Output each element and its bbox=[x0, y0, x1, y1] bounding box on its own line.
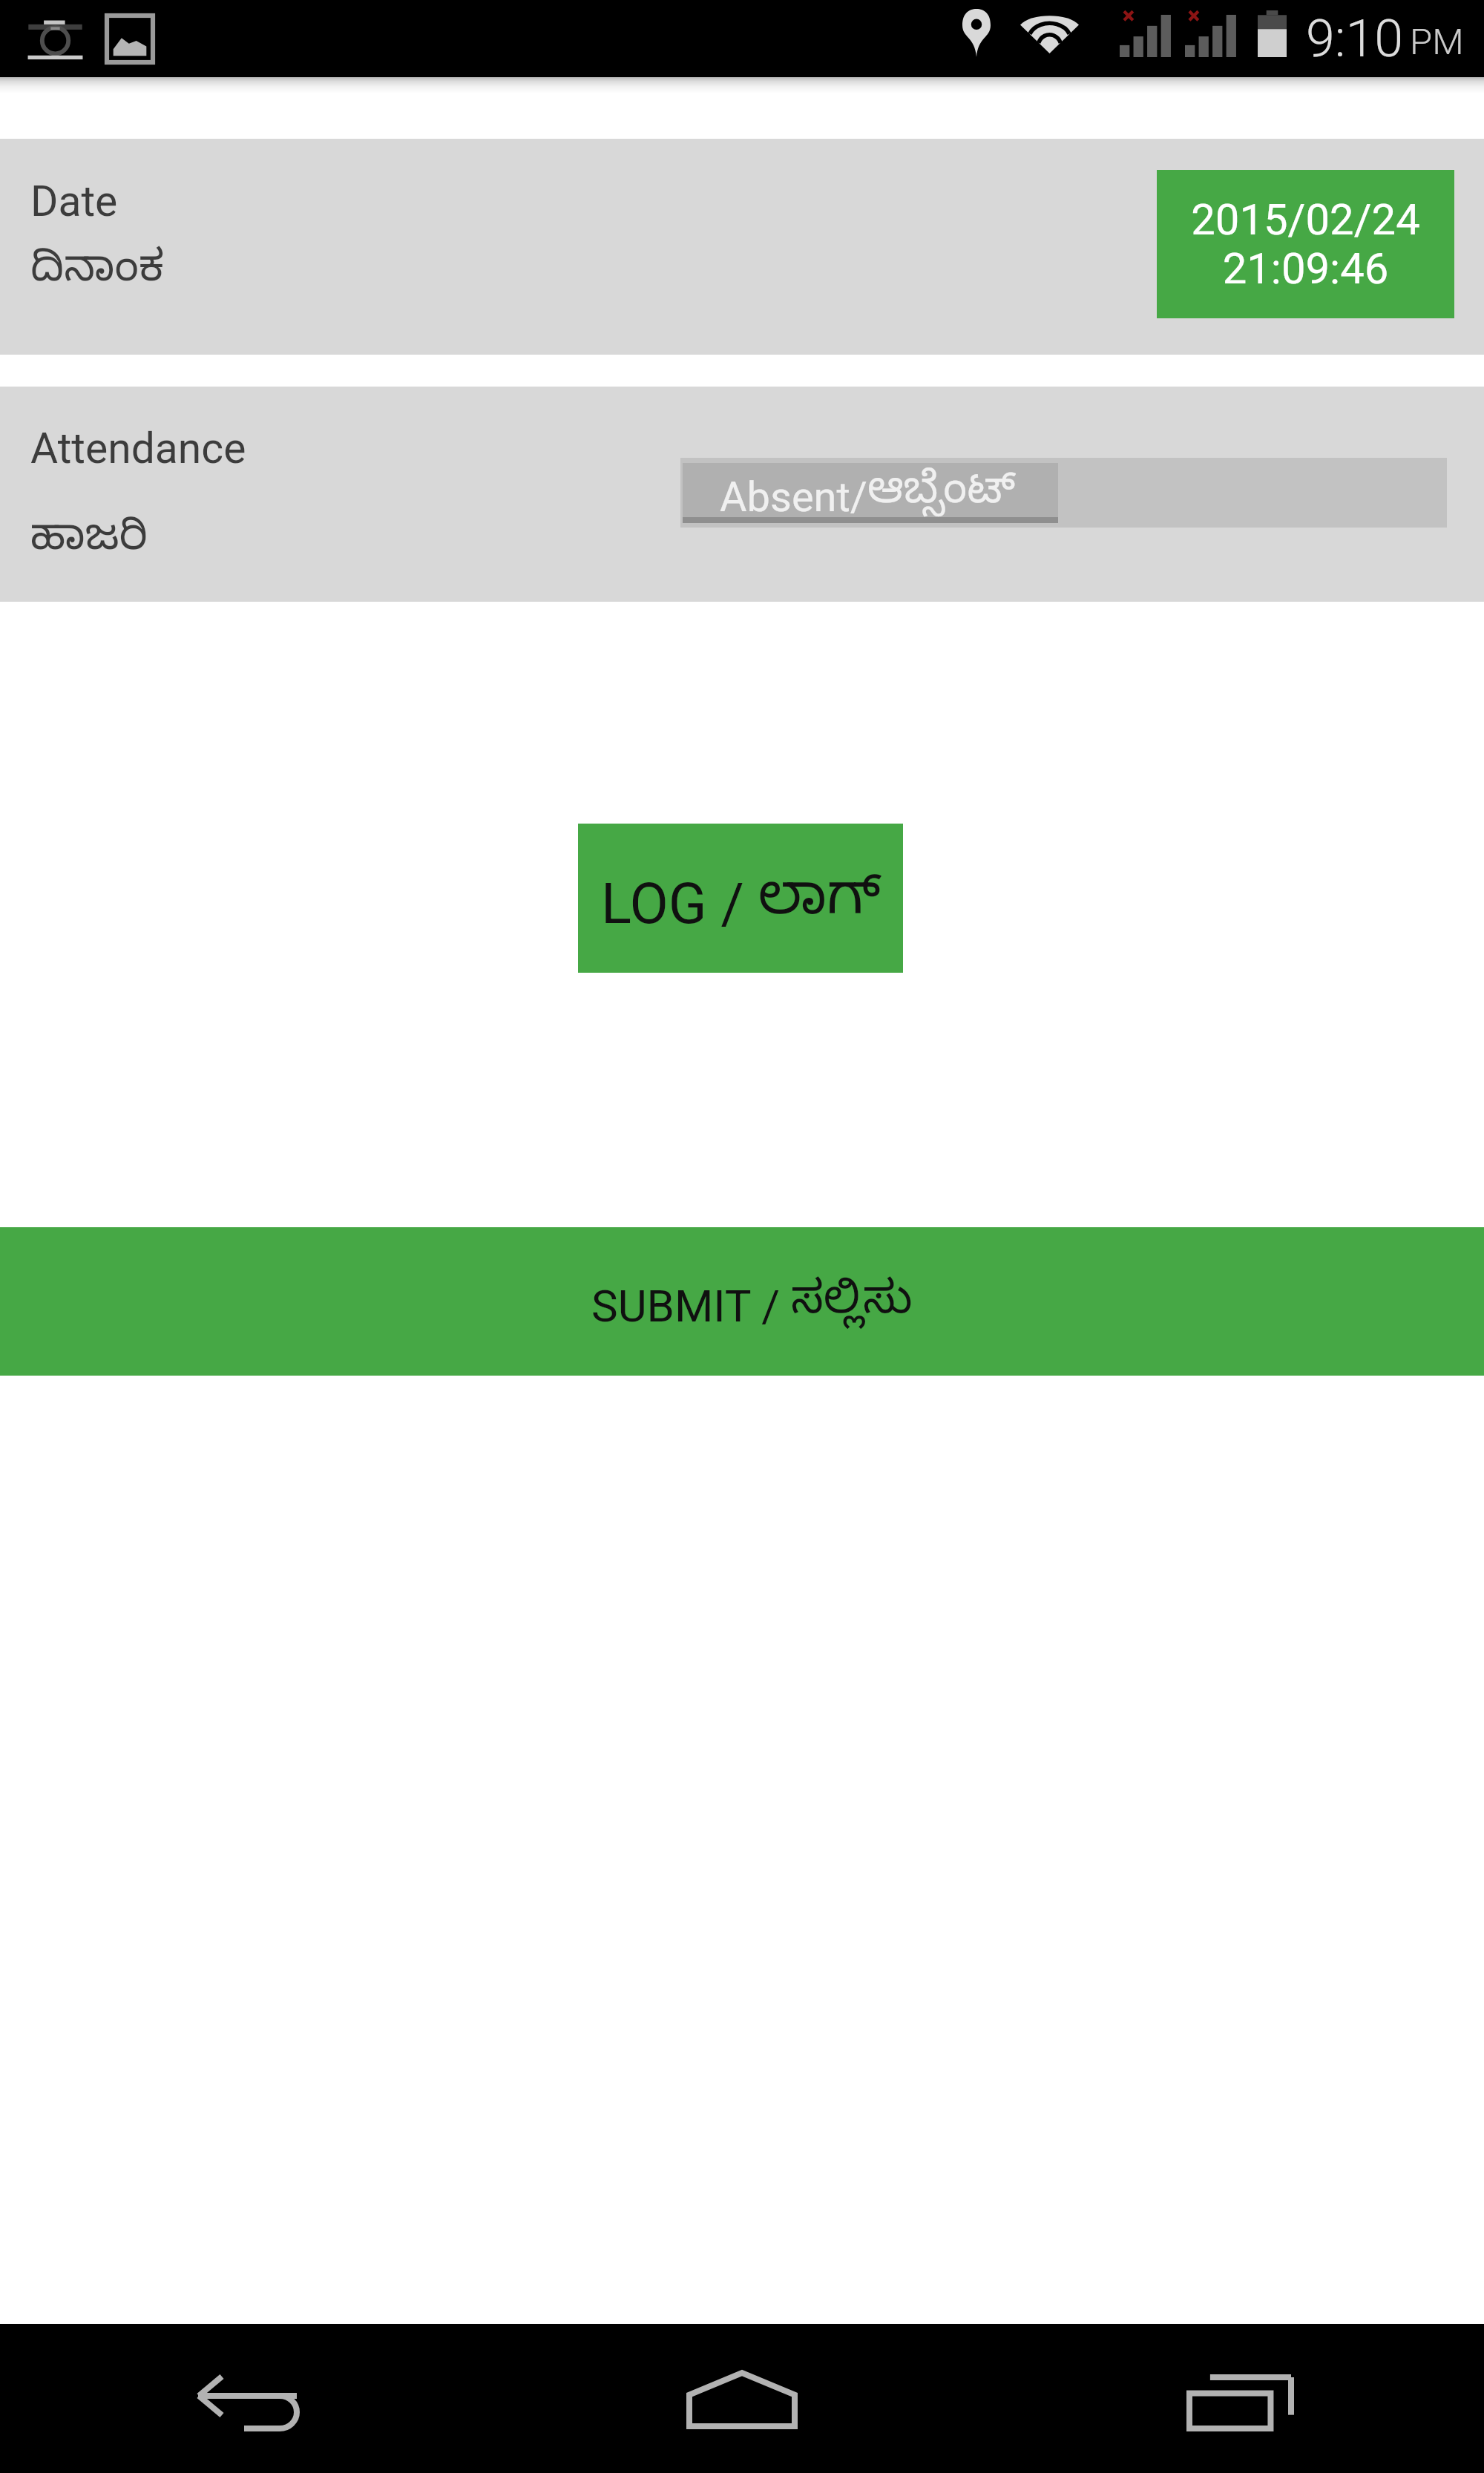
button[interactable]: Recent apps bbox=[990, 2324, 1336, 2473]
button[interactable]: Home bbox=[569, 2324, 915, 2473]
button[interactable]: 2015/02/24 21:09:46 bbox=[1157, 170, 1454, 318]
staticText: 2015/02/24 21:09:46 bbox=[1191, 194, 1420, 294]
button[interactable]: SUBMIT / ಸಲ್ಲಿಸು bbox=[0, 1227, 1484, 1376]
staticText: ಹಾಜರಿ bbox=[30, 513, 148, 573]
staticText: 9:10 bbox=[1306, 8, 1404, 69]
staticText: Absent/ಆಬ್ಸೆಂಟ್ bbox=[720, 467, 1016, 522]
button[interactable]: LOG / ಲಾಗ್ bbox=[578, 824, 903, 973]
staticText: Date bbox=[30, 177, 118, 226]
staticText: LOG / ಲಾಗ್ bbox=[601, 868, 881, 945]
staticText: PM bbox=[1410, 21, 1464, 63]
button[interactable]: Back bbox=[148, 2324, 494, 2473]
staticText: ದಿನಾಂಕ bbox=[30, 245, 164, 304]
staticText: SUBMIT / ಸಲ್ಲಿಸು bbox=[591, 1275, 913, 1338]
staticText: Attendance bbox=[30, 424, 246, 473]
button[interactable]: Absent/ಆಬ್ಸೆಂಟ್ bbox=[680, 458, 1447, 528]
